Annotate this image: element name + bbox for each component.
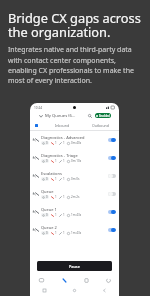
staticText: Queue 1 <box>41 207 57 212</box>
staticText: 0m 10s <box>71 159 82 163</box>
staticText: 1m 43s <box>71 213 82 217</box>
staticText: 1 <box>55 231 57 235</box>
staticText: 2m 2s <box>71 195 80 199</box>
staticText: 10:24 <box>34 106 43 110</box>
staticText: 0 <box>46 195 48 199</box>
staticText: Integrates native and third-party data w… <box>8 45 144 85</box>
staticText: 0 <box>46 177 48 181</box>
button[interactable]: Toggle Queue <box>108 192 116 196</box>
button[interactable]: Diagnostics - Triage <box>33 149 116 167</box>
button[interactable]: Toggle Queue 2 <box>108 228 116 232</box>
button[interactable]: Enabled <box>95 113 111 118</box>
staticText: 1 <box>55 195 57 199</box>
button[interactable]: Pause <box>37 261 112 271</box>
staticText: 0m 0s <box>71 177 80 181</box>
staticText: Enabled <box>99 114 110 118</box>
staticText: 1 <box>55 177 57 181</box>
staticText: 1m 43s <box>71 231 82 235</box>
button[interactable]: Calls <box>53 275 75 285</box>
staticText: 1 <box>55 141 57 145</box>
staticText: 0 <box>46 159 48 163</box>
button[interactable]: Inbound <box>43 120 81 130</box>
staticText: 0m 40s <box>71 141 82 145</box>
staticText: 1 <box>63 231 65 235</box>
staticText: 1 <box>63 141 65 145</box>
staticText: 0 <box>46 231 48 235</box>
button[interactable]: Filter <box>30 120 43 130</box>
staticText: 1 <box>63 177 65 181</box>
button[interactable]: Queue <box>33 185 116 203</box>
button[interactable]: Messages <box>30 275 53 285</box>
staticText: Escalations <box>41 171 62 176</box>
staticText: Bridge CX gaps across the organization. <box>8 9 144 41</box>
staticText: Queue 2 <box>41 225 57 230</box>
staticText: Pause <box>69 264 80 269</box>
button[interactable]: Expand queues <box>38 113 43 118</box>
button[interactable]: Toggle Queue 1 <box>108 210 116 214</box>
button[interactable]: Escalations <box>33 167 116 185</box>
staticText: Queue <box>41 189 54 194</box>
staticText: Diagnostics - Triage <box>41 153 78 158</box>
staticText: Inbound <box>55 123 70 128</box>
button[interactable]: Diagnostics - Advanced <box>33 131 116 149</box>
staticText: 0 <box>46 213 48 217</box>
staticText: 0 <box>46 141 48 145</box>
staticText: Diagnostics - Advanced <box>41 135 85 140</box>
button[interactable]: Search <box>87 113 93 119</box>
staticText: My Queues (6... <box>45 113 76 119</box>
button[interactable]: Queue 2 <box>33 221 116 239</box>
button[interactable]: Status <box>97 275 119 285</box>
button[interactable]: Outbound <box>81 120 119 130</box>
staticText: 1 <box>55 159 57 163</box>
staticText: 1 <box>63 159 65 163</box>
staticText: 1 <box>63 213 65 217</box>
staticText: Outbound <box>92 123 109 128</box>
button[interactable]: Queue 1 <box>33 203 116 221</box>
button[interactable]: Toggle Diagnostics - Triage <box>108 156 116 160</box>
staticText: 1 <box>55 213 57 217</box>
button[interactable]: Toggle Escalations <box>108 174 116 178</box>
button[interactable]: Tasks <box>75 275 97 285</box>
button[interactable]: Toggle Diagnostics - Advanced <box>108 138 116 142</box>
staticText: 1 <box>63 195 65 199</box>
